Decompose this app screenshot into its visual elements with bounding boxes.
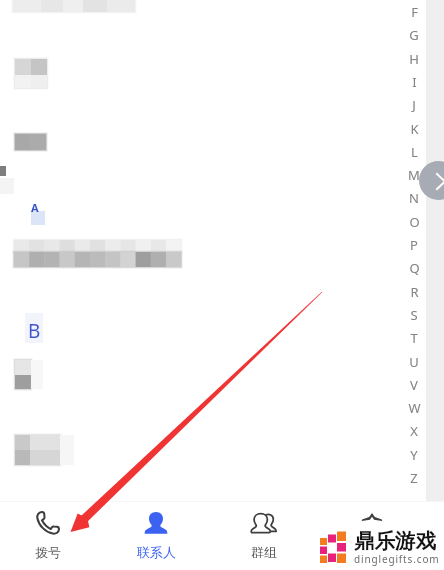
button[interactable]: 联系人 — [102, 502, 210, 570]
staticText: dinglegifts.com — [354, 552, 440, 566]
staticText: K — [410, 120, 419, 138]
staticText: N — [409, 189, 419, 207]
staticText: M — [408, 166, 420, 184]
button[interactable]: 群组 — [210, 502, 318, 570]
staticText: 设置 — [359, 544, 385, 560]
staticText: X — [410, 422, 418, 440]
staticText: F — [411, 3, 418, 21]
staticText: A — [31, 200, 39, 215]
staticText: 群组 — [251, 544, 277, 560]
staticText: U — [409, 353, 419, 371]
staticText: P — [410, 236, 418, 254]
staticText: S — [410, 306, 418, 324]
button[interactable]: 拨号 — [0, 502, 102, 570]
staticText: Y — [410, 446, 418, 464]
staticText: 联系人 — [137, 544, 176, 560]
staticText: G — [409, 26, 419, 44]
staticText: O — [409, 213, 420, 231]
button[interactable]: Expand — [419, 161, 444, 200]
staticText: L — [411, 143, 418, 161]
staticText: J — [412, 96, 416, 114]
staticText: B — [28, 318, 41, 344]
staticText: I — [412, 73, 417, 91]
staticText: V — [410, 376, 418, 394]
staticText: 拨号 — [35, 544, 61, 560]
staticText: H — [409, 50, 419, 68]
staticText: Z — [410, 469, 418, 487]
staticText: T — [410, 329, 418, 347]
staticText: Q — [409, 259, 420, 277]
staticText: 鼎乐游戏 — [354, 528, 436, 554]
button[interactable]: 设置 — [318, 502, 426, 570]
staticText: W — [408, 399, 421, 417]
staticText: R — [410, 283, 419, 301]
